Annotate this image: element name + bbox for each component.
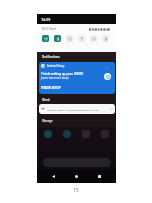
button[interactable]: App — [82, 130, 90, 138]
button[interactable]: Quick setting — [54, 35, 61, 42]
button[interactable]: Quick setting — [78, 35, 85, 42]
staticText: Just a few more steps — [41, 76, 69, 80]
button[interactable]: App — [63, 130, 71, 138]
staticText: Silent — [42, 98, 50, 102]
button[interactable]: Quick setting — [66, 35, 73, 42]
button[interactable]: Quick setting — [102, 35, 109, 42]
button[interactable]: Recent apps — [93, 170, 106, 183]
staticText: Android Setup — [47, 64, 65, 68]
button[interactable]: Android System • Charging this device vi… — [39, 104, 115, 114]
button[interactable]: Manage — [42, 119, 53, 123]
staticText: 14:39 — [41, 17, 51, 22]
button[interactable]: Quick setting — [90, 35, 97, 42]
staticText: Wi-Fi Direct — [42, 27, 57, 31]
staticText: 15 — [0, 187, 152, 193]
button[interactable]: Quick setting — [42, 35, 49, 42]
button[interactable]: App — [101, 130, 109, 138]
button[interactable]: App — [44, 130, 52, 138]
staticText: Android System • Charging this device vi… — [47, 108, 99, 111]
staticText: Notifications — [42, 55, 60, 59]
staticText: Finish setting up your WORK — [41, 72, 84, 76]
button[interactable]: Search — [43, 158, 111, 167]
button[interactable]: Back — [47, 170, 60, 183]
button[interactable]: Home — [70, 170, 83, 183]
button[interactable]: Android Setup — [39, 62, 115, 94]
button[interactable]: FINISH SETUP — [41, 86, 61, 90]
